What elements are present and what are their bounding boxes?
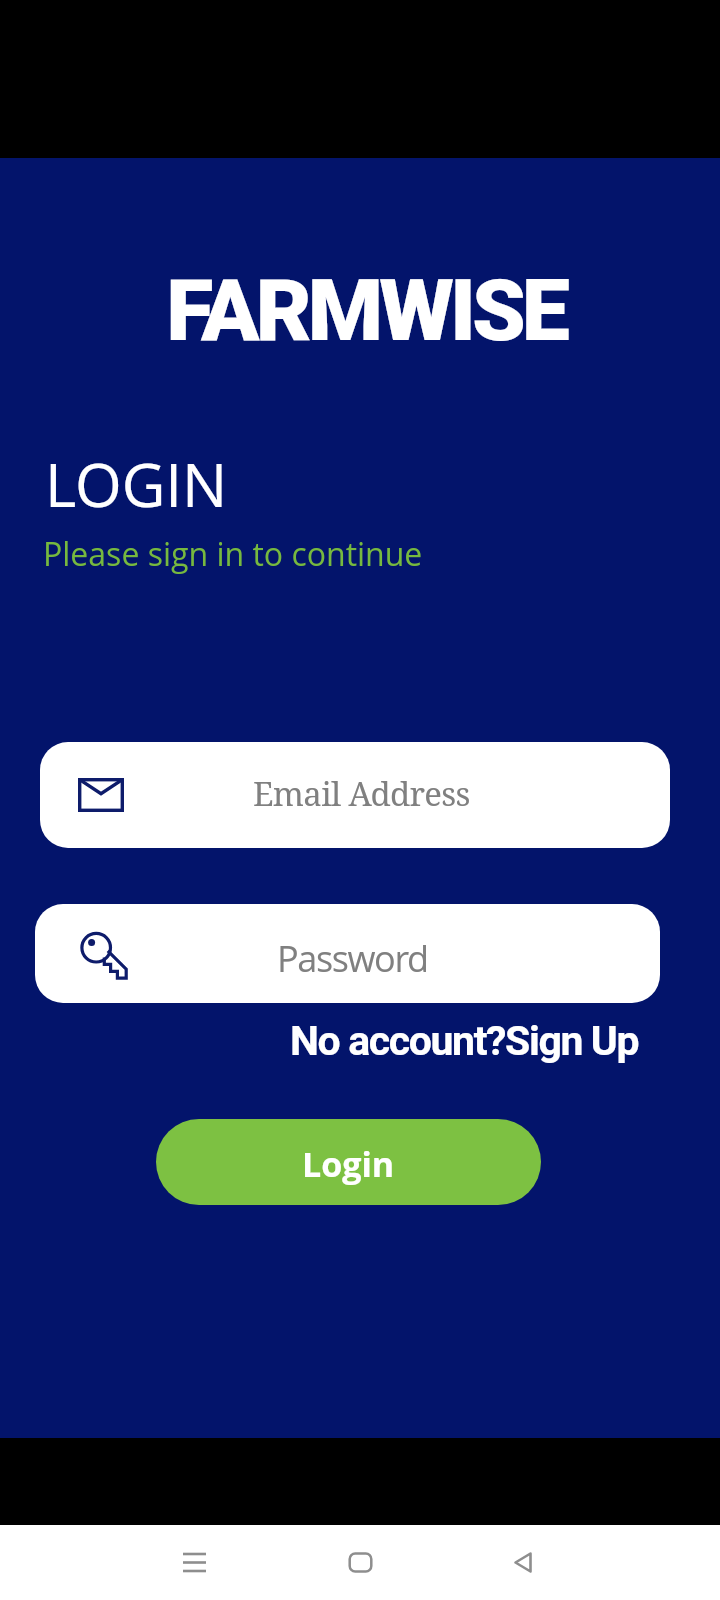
staticText: Email Address	[253, 771, 470, 816]
button[interactable]: Login	[156, 1119, 541, 1205]
button[interactable]	[338, 1540, 383, 1585]
staticText: Password	[277, 934, 428, 983]
button[interactable]: No account?Sign Up	[290, 1017, 639, 1065]
button[interactable]: Password	[35, 904, 660, 1003]
button[interactable]	[172, 1540, 217, 1585]
staticText: LOGIN	[45, 443, 228, 525]
button[interactable]	[502, 1540, 547, 1585]
staticText: Login	[302, 1141, 395, 1187]
button[interactable]: Email Address	[40, 742, 670, 848]
staticText: FARMWISE	[6, 260, 720, 361]
staticText: Please sign in to continue	[43, 532, 423, 576]
